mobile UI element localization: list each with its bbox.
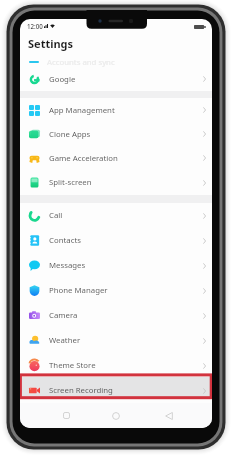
button[interactable]: Call: [20, 203, 212, 228]
button[interactable]: Weather: [20, 328, 212, 353]
staticText: 12:00: [27, 22, 43, 30]
button[interactable]: Recents: [58, 403, 74, 428]
staticText: Screen Recording: [49, 385, 113, 396]
button[interactable]: Screen Recording: [20, 378, 212, 403]
staticText: App Management: [49, 105, 115, 116]
staticText: Phone Manager: [49, 285, 108, 296]
staticText: Game Acceleration: [49, 153, 118, 164]
staticText: Split-screen: [49, 177, 92, 188]
button[interactable]: Home: [108, 403, 124, 428]
staticText: Contacts: [49, 235, 81, 246]
button[interactable]: Back: [161, 403, 177, 428]
staticText: Google: [49, 74, 76, 85]
staticText: Theme Store: [49, 360, 96, 371]
staticText: Clone Apps: [49, 129, 91, 140]
button[interactable]: Contacts: [20, 228, 212, 253]
button[interactable]: Camera: [20, 303, 212, 328]
button[interactable]: App Management: [20, 98, 212, 122]
button[interactable]: Phone Manager: [20, 278, 212, 303]
button[interactable]: Google: [20, 67, 212, 91]
staticText: Weather: [49, 335, 81, 346]
staticText: Accounts and sync: [47, 57, 115, 68]
button[interactable]: Messages: [20, 253, 212, 278]
staticText: Camera: [49, 310, 78, 321]
staticText: Messages: [49, 260, 86, 271]
staticText: Call: [49, 210, 63, 221]
button[interactable]: Clone Apps: [20, 122, 212, 146]
button[interactable]: Theme Store: [20, 353, 212, 378]
button[interactable]: Game Acceleration: [20, 146, 212, 170]
staticText: Settings: [28, 36, 74, 51]
button[interactable]: Split-screen: [20, 170, 212, 195]
